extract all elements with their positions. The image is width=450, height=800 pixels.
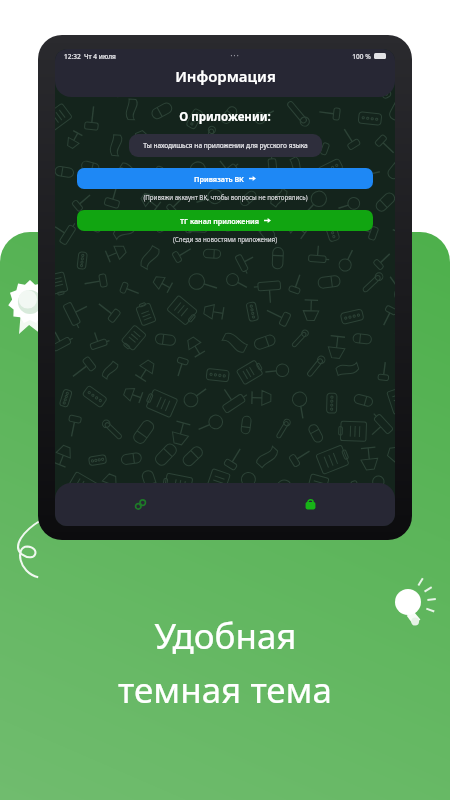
- staticText: Ты находишься на приложении для русского…: [143, 141, 308, 150]
- staticText: 100 %: [352, 52, 371, 61]
- staticText: О приложении:: [179, 109, 271, 125]
- button[interactable]: Привязка: [55, 483, 225, 526]
- staticText: 12:32 Чт 4 июля: [64, 52, 116, 61]
- staticText: Информация: [175, 66, 276, 86]
- staticText: • • •: [230, 53, 239, 60]
- staticText: Привязать ВК: [194, 174, 244, 184]
- staticText: темная тема: [118, 666, 332, 714]
- button[interactable]: Ты находишься на приложении для русского…: [129, 134, 322, 157]
- button[interactable]: ТГ канал приложения: [77, 210, 373, 231]
- button[interactable]: Магазин: [225, 483, 395, 526]
- button[interactable]: Привязать ВК: [77, 168, 373, 189]
- staticText: (Следи за новостями приложения): [173, 235, 277, 243]
- staticText: ТГ канал приложения: [180, 216, 259, 226]
- staticText: Удобная: [154, 612, 297, 660]
- staticText: (Привяжи аккаунт ВК, чтобы вопросы не по…: [143, 193, 308, 201]
